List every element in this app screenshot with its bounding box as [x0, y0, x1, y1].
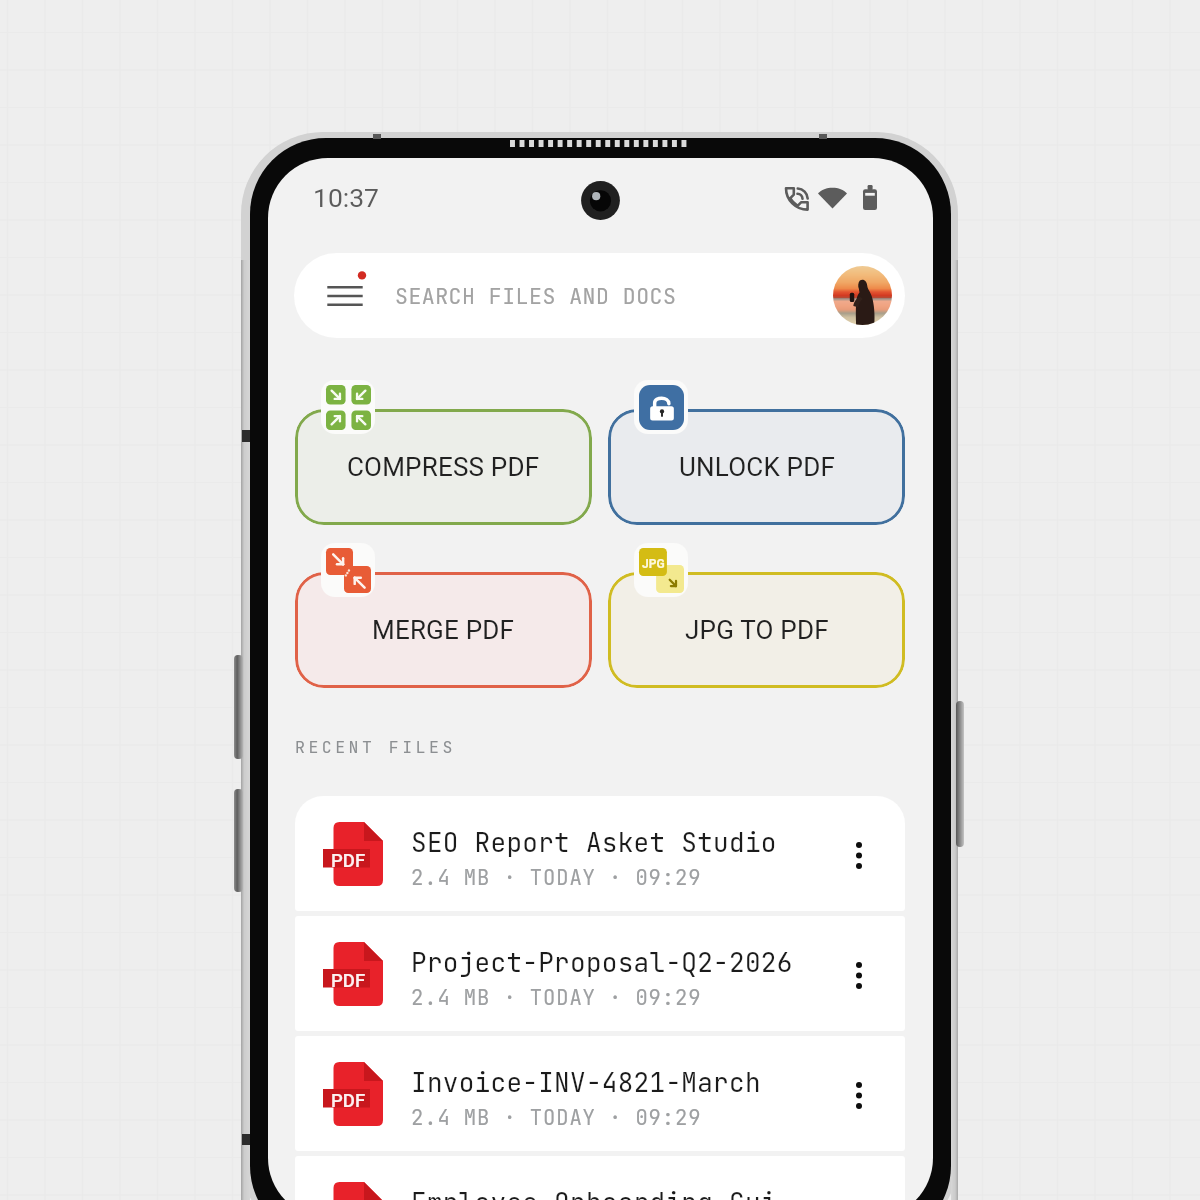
staticText: 2.4 MB · TODAY · 09:29 [411, 984, 702, 1011]
button[interactable]: COMPRESS PDF [295, 409, 592, 525]
button[interactable]: PDF file [295, 796, 905, 911]
button[interactable]: MERGE PDF [295, 572, 592, 688]
staticText: SEO Report Asket Studio [411, 825, 777, 859]
button[interactable]: Compress PDF [321, 380, 375, 434]
other: PDF file [323, 1062, 383, 1126]
other: Unlock PDF [639, 385, 684, 430]
other: PDF file [323, 1182, 383, 1200]
button[interactable]: JPG TO PDF [608, 572, 905, 688]
button[interactable]: PDF file [295, 916, 905, 1031]
staticText: PDF [331, 970, 366, 992]
button[interactable]: PDF file [295, 1156, 905, 1200]
button[interactable]: PDF file [295, 1036, 905, 1151]
staticText: JPG TO PDF [685, 615, 829, 645]
button[interactable]: More options [831, 1066, 887, 1122]
other: Menu [328, 273, 364, 319]
button[interactable]: UNLOCK PDF [608, 409, 905, 525]
button[interactable]: More options [831, 826, 887, 882]
staticText: SEARCH FILES AND DOCS [395, 282, 677, 310]
button[interactable]: Merge PDF [321, 543, 375, 597]
staticText: COMPRESS PDF [347, 452, 540, 482]
other: Compress PDF [326, 385, 371, 430]
staticText: 10:37 [313, 182, 379, 213]
button[interactable]: JPG to PDF [634, 543, 688, 597]
button[interactable]: Menu [294, 253, 905, 338]
staticText: 2.4 MB · TODAY · 09:29 [411, 864, 702, 891]
other: PDF file [323, 942, 383, 1006]
staticText: RECENT FILES [295, 736, 456, 758]
staticText: MERGE PDF [372, 615, 515, 645]
staticText: Invoice-INV-4821-March [411, 1065, 761, 1099]
other: PDF file [323, 822, 383, 886]
other: Merge PDF [326, 548, 371, 593]
staticText: PDF [331, 1090, 366, 1112]
staticText: JPG [642, 557, 665, 571]
staticText: UNLOCK PDF [679, 452, 835, 482]
staticText: 2.4 MB · TODAY · 09:29 [411, 1104, 702, 1131]
button[interactable]: Unlock PDF [634, 380, 688, 434]
other: JPG to PDF [639, 548, 684, 593]
staticText: Employee-Onboarding-Gui [411, 1185, 777, 1200]
button[interactable]: More options [831, 946, 887, 1002]
staticText: PDF [331, 850, 366, 872]
other: Profile [833, 266, 892, 325]
staticText: Project-Proposal-Q2-2026 [411, 945, 793, 979]
